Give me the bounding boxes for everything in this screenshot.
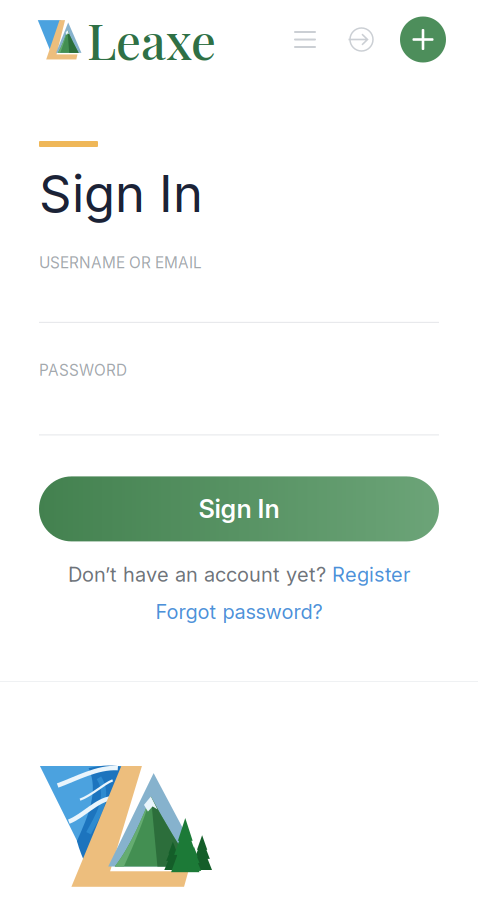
button[interactable]: Sign In bbox=[39, 476, 439, 541]
button[interactable]: Forgot password bbox=[155, 600, 322, 624]
button[interactable]: Sign in bbox=[340, 18, 383, 61]
staticText: Register bbox=[332, 562, 410, 587]
button[interactable]: Menu bbox=[285, 22, 325, 57]
button[interactable]: Add bbox=[400, 16, 446, 62]
staticText: Forgot password? bbox=[155, 600, 322, 624]
button[interactable]: Register bbox=[332, 562, 410, 587]
staticText: Sign In bbox=[39, 163, 203, 224]
staticText: Sign In bbox=[198, 494, 279, 524]
button[interactable]: Leaxe home bbox=[0, 7, 216, 72]
staticText: USERNAME OR EMAIL bbox=[39, 253, 202, 272]
staticText: PASSWORD bbox=[39, 361, 127, 379]
staticText: Don’t have an account yet? bbox=[68, 562, 332, 587]
staticText: Leaxe bbox=[87, 7, 216, 72]
